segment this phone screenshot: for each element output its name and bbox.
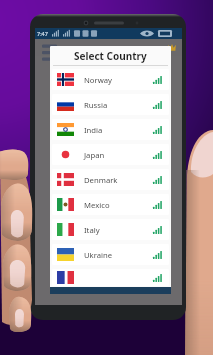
button[interactable]: Premium [168, 43, 176, 52]
staticText: 7:47 [37, 30, 48, 37]
button[interactable]: Russia [52, 94, 169, 115]
staticText: Japan [84, 150, 105, 160]
staticText: Italy [84, 225, 100, 235]
button[interactable]: Ukraine [52, 244, 169, 265]
button[interactable]: Menu [41, 43, 50, 53]
staticText: Denmark [84, 175, 118, 185]
button[interactable]: Japan [52, 144, 169, 165]
button[interactable]: Mexico [52, 194, 169, 215]
button[interactable]: Italy [52, 219, 169, 240]
staticText: Russia [84, 100, 108, 110]
button[interactable]: Norway [52, 69, 169, 90]
staticText: Ukraine [84, 250, 113, 260]
button[interactable]: Denmark [52, 169, 169, 190]
button[interactable]: India [52, 119, 169, 140]
staticText: Select Country [74, 49, 147, 63]
staticText: Mexico [84, 200, 110, 210]
staticText: Norway [84, 75, 112, 85]
button[interactable] [52, 269, 169, 286]
staticText: India [84, 125, 103, 135]
